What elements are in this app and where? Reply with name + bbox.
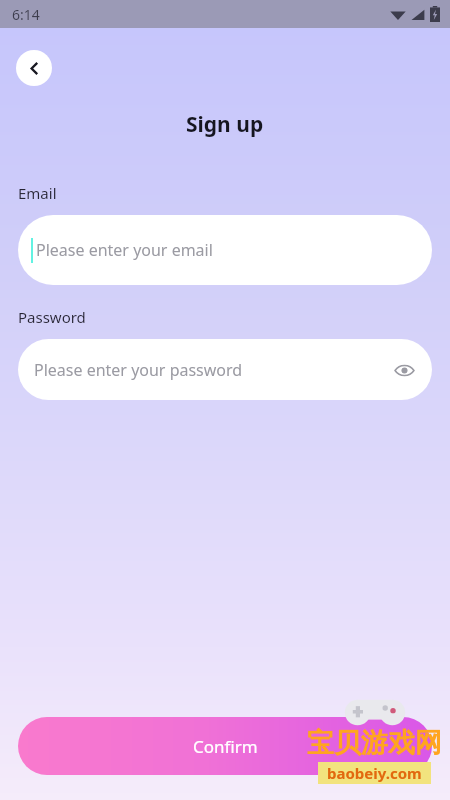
staticText: 网 <box>415 726 442 760</box>
staticText: 6:14 <box>12 5 40 24</box>
button[interactable]: Please enter your password <box>18 339 432 400</box>
staticText: Please enter your password <box>34 359 391 381</box>
staticText: Password <box>18 307 86 327</box>
staticText: Email <box>18 183 57 203</box>
staticText: Sign up <box>186 110 264 139</box>
staticText: Confirm <box>193 735 258 758</box>
staticText: 戏 <box>388 726 415 760</box>
button[interactable]: Back <box>16 50 52 86</box>
button[interactable]: Confirm <box>18 717 432 775</box>
button[interactable]: Please enter your email <box>18 215 432 285</box>
staticText: 贝 <box>334 726 361 760</box>
staticText: baobeiy.com <box>327 763 422 783</box>
staticText: 宝 <box>307 726 334 760</box>
staticText: Please enter your email <box>36 239 213 261</box>
button[interactable]: Show password <box>391 357 417 383</box>
staticText: 游 <box>361 726 388 760</box>
